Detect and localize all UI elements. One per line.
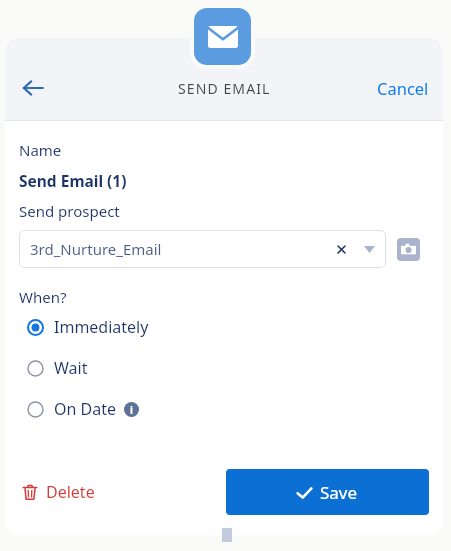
button[interactable]: Cancel bbox=[363, 69, 443, 107]
button[interactable]: 3rd_Nurture_Email bbox=[19, 230, 386, 268]
staticText: i bbox=[130, 403, 133, 417]
staticText: When? bbox=[19, 287, 67, 307]
staticText: Delete bbox=[46, 481, 95, 503]
staticText: On Date bbox=[54, 398, 117, 420]
button[interactable]: Back bbox=[11, 66, 55, 110]
button[interactable]: On Date bbox=[19, 397, 139, 421]
button[interactable]: Clear bbox=[332, 240, 350, 258]
staticText: Cancel bbox=[377, 77, 429, 99]
button[interactable]: Info bbox=[124, 402, 139, 417]
staticText: Immediately bbox=[54, 316, 149, 338]
staticText: 3rd_Nurture_Email bbox=[30, 239, 332, 259]
staticText: SEND EMAIL bbox=[178, 79, 271, 98]
button[interactable]: Send email bbox=[194, 8, 251, 65]
staticText: Wait bbox=[54, 357, 88, 379]
staticText: Send Email (1) bbox=[19, 170, 127, 191]
button[interactable]: Delete bbox=[19, 475, 99, 509]
staticText: Save bbox=[320, 481, 358, 504]
staticText: Send prospect bbox=[19, 201, 120, 221]
button[interactable]: Wait bbox=[19, 356, 88, 380]
button[interactable]: Camera bbox=[397, 238, 420, 261]
button[interactable]: Immediately bbox=[19, 315, 149, 339]
button[interactable]: Open dropdown bbox=[360, 240, 378, 258]
button[interactable]: Save bbox=[226, 469, 429, 515]
staticText: Name bbox=[19, 140, 62, 160]
